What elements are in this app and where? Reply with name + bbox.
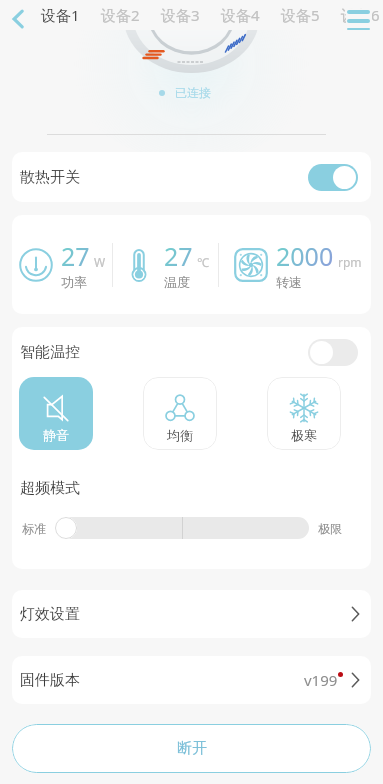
staticText: W	[94, 254, 106, 270]
button[interactable]: 固件版本	[12, 656, 371, 704]
staticText: 极限	[318, 521, 342, 536]
staticText: 静音	[43, 427, 69, 443]
staticText: 超频模式	[20, 479, 80, 498]
staticText: 设备1	[41, 5, 80, 25]
staticText: v199	[304, 670, 338, 690]
button[interactable]: Turn on	[308, 339, 358, 366]
button[interactable]: Menu	[346, 9, 372, 30]
button[interactable]: 均衡	[143, 377, 217, 450]
staticText: 2000	[276, 239, 334, 273]
staticText: 转速	[276, 274, 302, 290]
staticText: 27	[61, 239, 90, 273]
button[interactable]: 智能温控	[12, 327, 371, 377]
button[interactable]: 设备6	[337, 0, 383, 30]
staticText: 均衡	[167, 427, 193, 443]
staticText: 27	[164, 239, 193, 273]
button[interactable]: 设备2	[97, 0, 143, 30]
staticText: ℃	[197, 254, 209, 270]
button[interactable]: 设备5	[277, 0, 323, 30]
button[interactable]: 设备1	[37, 0, 83, 30]
button[interactable]: 设备4	[217, 0, 263, 30]
button[interactable]: Turn off	[308, 164, 358, 191]
staticText: rpm	[338, 254, 362, 270]
staticText: 固件版本	[20, 671, 80, 690]
staticText: 功率	[61, 274, 87, 290]
staticText: 已连接	[175, 85, 211, 100]
button[interactable]: 断开	[12, 724, 371, 773]
staticText: 设备4	[221, 5, 260, 25]
button[interactable]: 设备3	[157, 0, 203, 30]
staticText: 温度	[164, 274, 190, 290]
button[interactable]: 静音	[19, 377, 93, 450]
staticText: 设备3	[161, 5, 200, 25]
button[interactable]: 极寒	[267, 377, 341, 450]
staticText: 标准	[22, 521, 46, 536]
button[interactable]: Back	[4, 5, 32, 33]
staticText: 设备6	[341, 5, 380, 25]
staticText: 设备5	[281, 5, 320, 25]
button[interactable]: 灯效设置	[12, 590, 371, 638]
staticText: 灯效设置	[20, 605, 80, 624]
staticText: 智能温控	[20, 343, 80, 362]
staticText: 散热开关	[20, 168, 80, 187]
button[interactable]: 散热开关	[12, 152, 371, 202]
staticText: 断开	[177, 739, 207, 758]
button[interactable]: Overclock level	[55, 517, 309, 539]
staticText: 设备2	[101, 5, 140, 25]
staticText: 极寒	[291, 427, 317, 443]
